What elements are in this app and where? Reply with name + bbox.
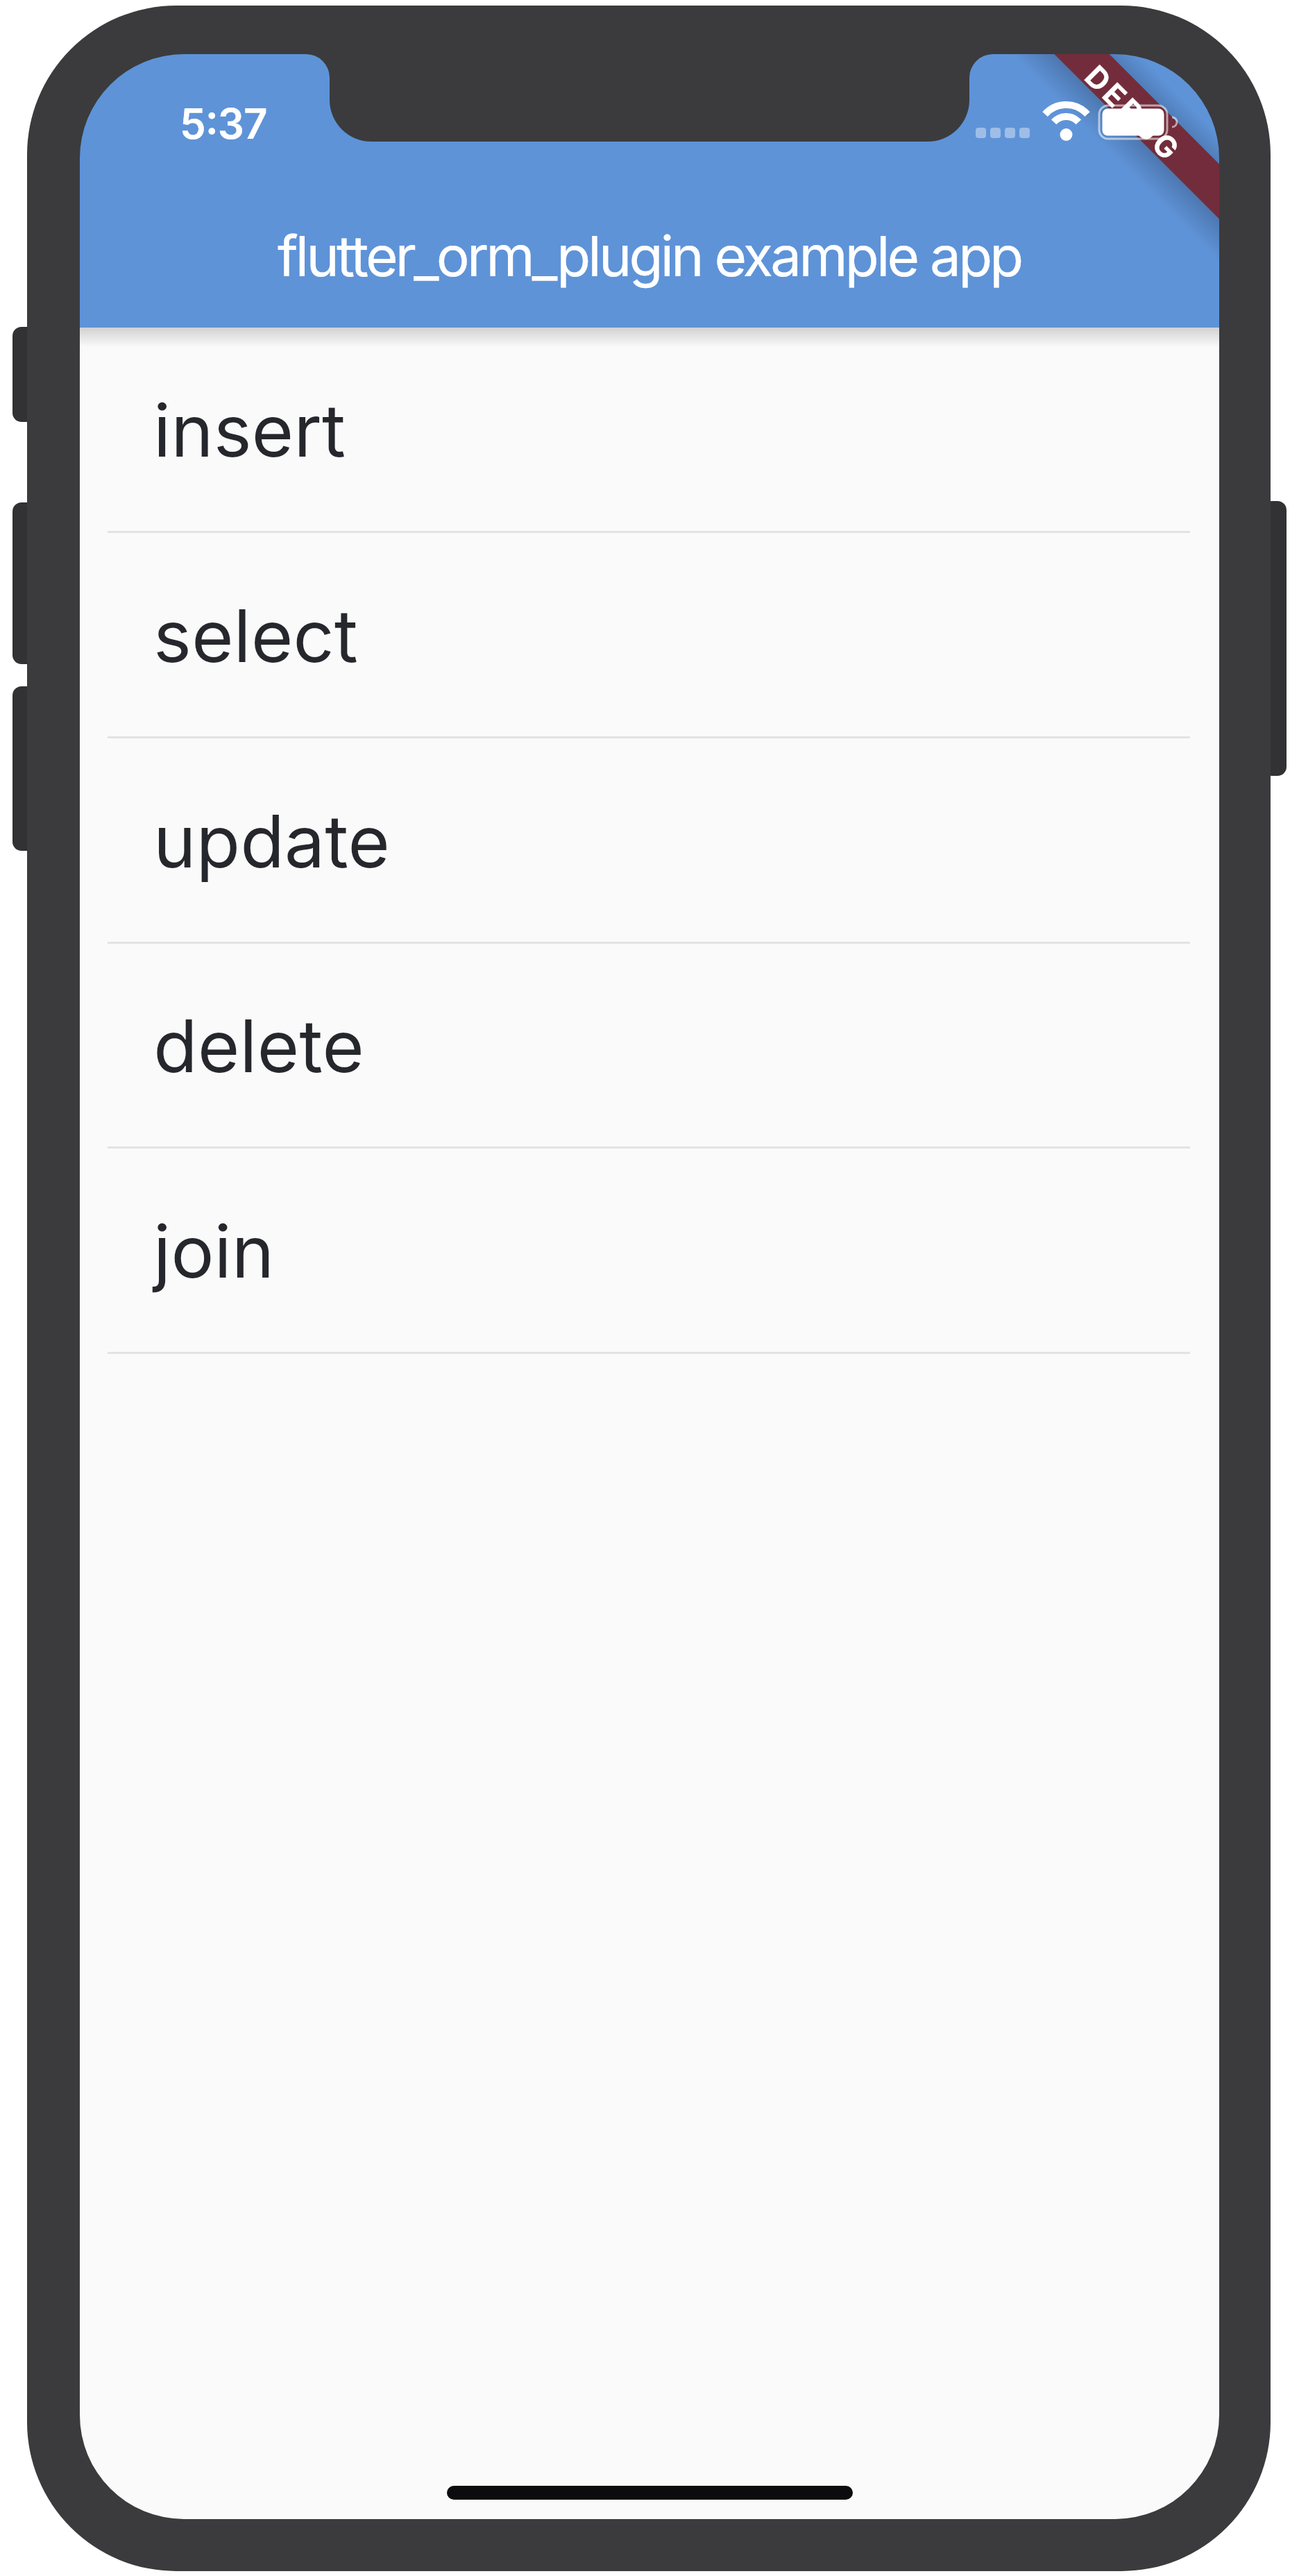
staticText: insert [153,387,346,474]
button[interactable]: update [80,738,1219,944]
staticText: join [153,1207,275,1295]
button[interactable]: join [80,1149,1219,1354]
button[interactable]: select [80,533,1219,738]
button[interactable]: insert [80,328,1219,533]
staticText: DEBUG [1078,58,1189,169]
staticText: select [153,592,358,679]
button[interactable]: delete [80,943,1219,1149]
staticText: flutter_orm_plugin example app [278,222,1021,289]
staticText: 5:37 [180,99,267,149]
staticText: update [153,797,390,885]
staticText: delete [153,1002,364,1090]
